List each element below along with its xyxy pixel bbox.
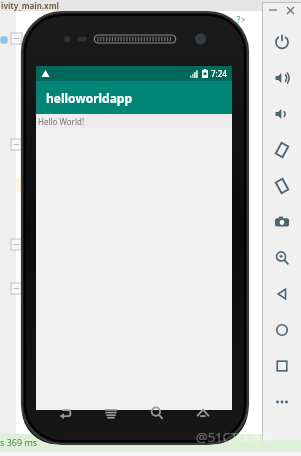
button[interactable]: Back: [48, 396, 82, 430]
button[interactable]: Volume up: [262, 60, 301, 96]
staticText: @51CTO博客: [196, 428, 274, 446]
button[interactable]: Close: [284, 4, 296, 16]
button[interactable]: Rotate left: [262, 132, 301, 168]
button[interactable]: Overview: [262, 348, 301, 384]
staticText: helloworldapp: [46, 90, 133, 106]
staticText: c: [236, 34, 241, 54]
button[interactable]: Search: [140, 396, 174, 430]
button[interactable]: Power: [262, 24, 301, 60]
button[interactable]: helloworldapp: [36, 81, 232, 114]
staticText: ?>: [236, 14, 246, 34]
staticText: Hello World!: [38, 116, 85, 127]
staticText: ivity_main.xml: [1, 0, 59, 11]
button[interactable]: Zoom: [262, 240, 301, 276]
button[interactable]: Volume down: [262, 96, 301, 132]
button[interactable]: More: [262, 384, 301, 420]
staticText: 7:24: [211, 68, 227, 79]
button[interactable]: Home: [186, 396, 220, 430]
button[interactable]: Back: [262, 276, 301, 312]
button[interactable]: Menu: [94, 396, 128, 430]
button[interactable]: Minimize: [267, 4, 279, 16]
button[interactable]: Screenshot: [262, 204, 301, 240]
button[interactable]: Home: [262, 312, 301, 348]
button[interactable]: Rotate right: [262, 168, 301, 204]
staticText: s 369 ms: [0, 436, 38, 448]
